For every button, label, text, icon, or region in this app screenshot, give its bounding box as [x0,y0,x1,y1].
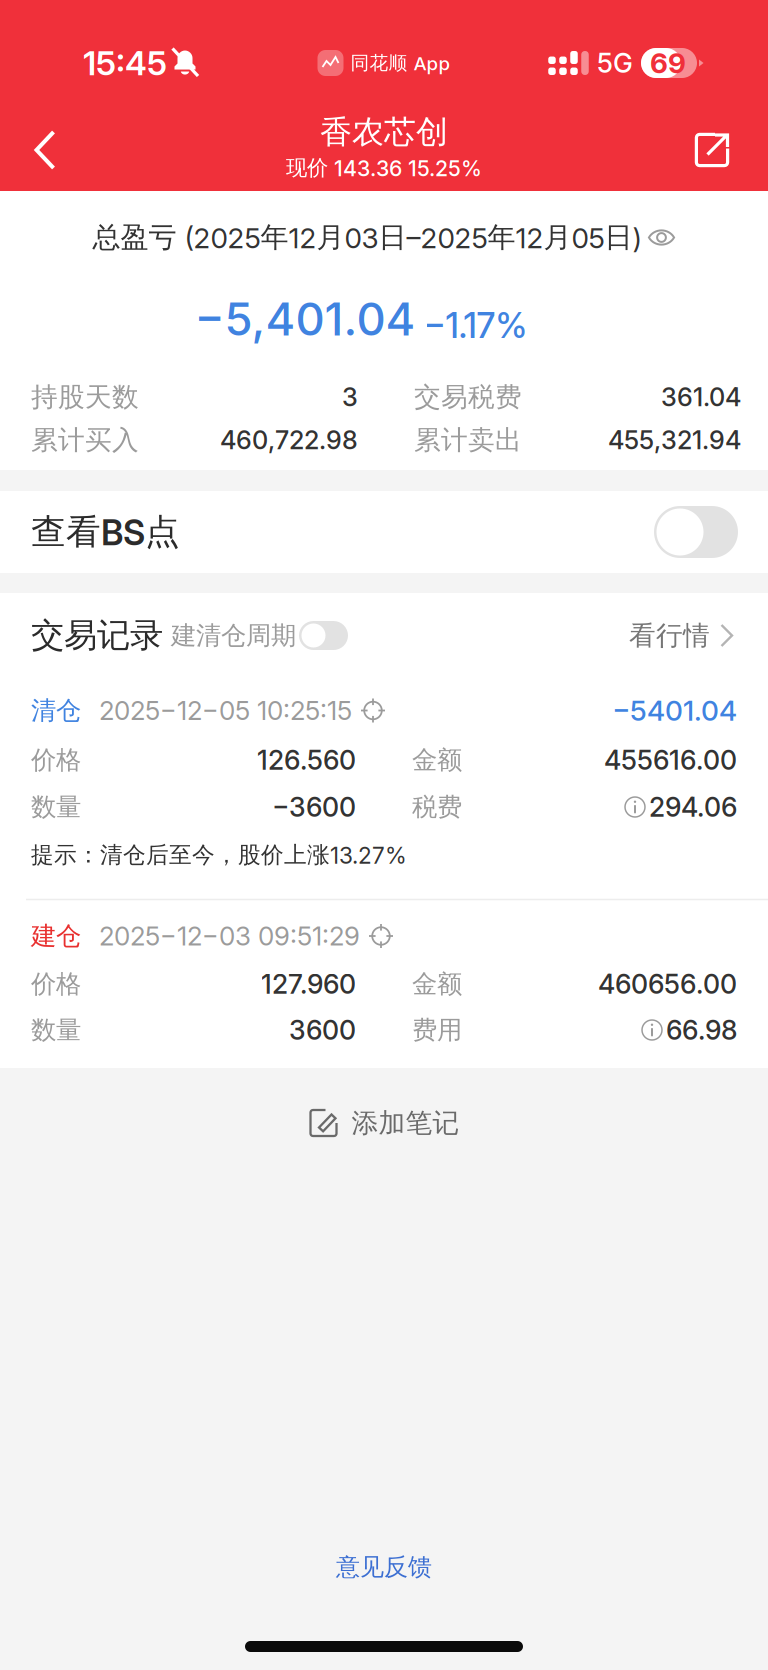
staticText: 3 [342,382,358,412]
staticText: 清仓 [31,694,81,726]
staticText: 意见反馈 [336,1552,432,1582]
staticText: 建仓 [31,920,81,952]
staticText: 3600 [289,1014,356,1046]
button[interactable]: 意见反馈 [0,1537,768,1597]
staticText: 2025−12−03 09:51:29 [99,920,360,952]
staticText: −5401.04 [612,694,737,727]
staticText: 361.04 [661,382,741,412]
staticText: 累计卖出 [414,423,522,457]
staticText: 费用 [412,1014,462,1046]
staticText: 总盈亏 (2025年12月03日–2025年12月05日) [92,220,641,255]
button[interactable]: 查看BS点 [0,491,768,573]
staticText: 294.06 [649,791,737,823]
staticText: 税费 [412,791,462,823]
staticText: 69 [650,46,686,80]
staticText: 2025−12−05 10:25:15 [99,695,352,726]
staticText: 持股天数 [31,380,139,414]
staticText: 5G [597,47,633,79]
staticText: 数量 [31,791,81,823]
staticText: 交易记录 [31,614,163,656]
staticText: −5,401.04 [194,292,415,346]
button[interactable]: Back [14,119,76,181]
button[interactable]: Share [681,119,743,181]
staticText: 建清仓周期 [171,619,296,651]
staticText: 价格 [31,968,81,1000]
staticText: 同花顺 App [350,51,450,75]
staticText: 交易税费 [414,380,522,414]
staticText: 126.560 [257,744,356,776]
staticText: 460,722.98 [220,425,358,455]
button[interactable]: 看行情 [629,619,736,652]
staticText: 现价 143.36 15.25% [286,155,482,181]
staticText: 455,321.94 [608,425,741,455]
staticText: 提示：清仓后至今，股价上涨13.27% [31,841,407,869]
staticText: 添加笔记 [351,1106,459,1140]
staticText: 数量 [31,1014,81,1046]
staticText: 查看BS点 [31,510,180,554]
staticText: 香农芯创 [320,112,448,152]
staticText: 金额 [412,744,462,776]
staticText: 看行情 [629,619,710,652]
staticText: 460656.00 [598,968,737,1000]
staticText: 455616.00 [604,744,737,776]
staticText: −1.17% [423,304,527,346]
staticText: 价格 [31,744,81,776]
staticText: 15:45 [83,43,167,83]
staticText: 金额 [412,968,462,1000]
staticText: −3600 [272,791,356,823]
staticText: 累计买入 [31,423,139,457]
staticText: 127.960 [261,968,356,1000]
button[interactable]: 添加笔记 [0,1068,768,1178]
staticText: 66.98 [666,1014,737,1046]
